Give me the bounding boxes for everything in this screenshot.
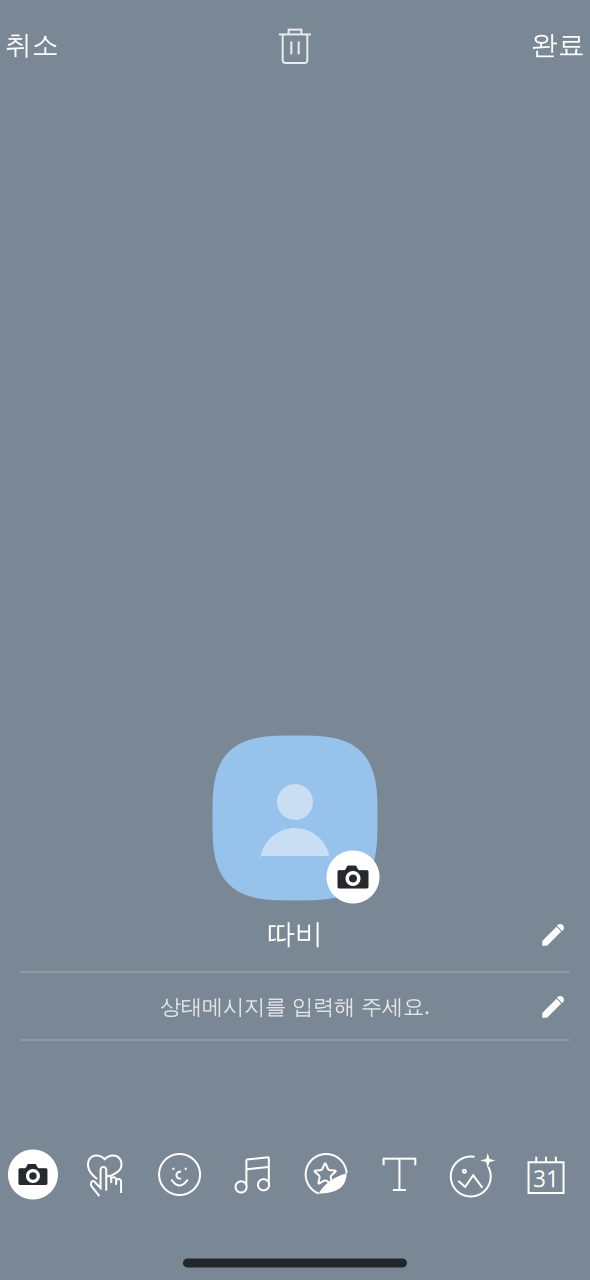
button[interactable]: 캘린더 <box>509 1144 583 1204</box>
button[interactable]: 완료 <box>507 17 590 73</box>
button[interactable]: 이름 편집 <box>526 906 582 962</box>
button[interactable]: 삭제 <box>266 17 324 73</box>
staticText: 31 <box>533 1163 559 1193</box>
staticText: 상태메시지를 입력해 주세요. <box>160 992 430 1020</box>
button[interactable]: 스티커 <box>289 1144 363 1204</box>
button[interactable]: 이모티콘 <box>143 1144 216 1204</box>
button[interactable]: 좋아요 <box>70 1144 143 1204</box>
staticText: 완료 <box>531 29 585 61</box>
button[interactable]: 취소 <box>0 17 83 73</box>
staticText: 취소 <box>5 29 59 61</box>
button[interactable]: 사진 효과 <box>436 1144 509 1204</box>
button[interactable]: 상태메시지 편집 <box>526 978 582 1034</box>
button[interactable]: 프로필 사진 변경 <box>326 850 379 903</box>
button[interactable]: 음악 <box>216 1144 289 1204</box>
button[interactable]: 텍스트 <box>363 1144 436 1204</box>
button[interactable]: 카메라 <box>0 1144 70 1204</box>
staticText: 따비 <box>267 917 323 951</box>
